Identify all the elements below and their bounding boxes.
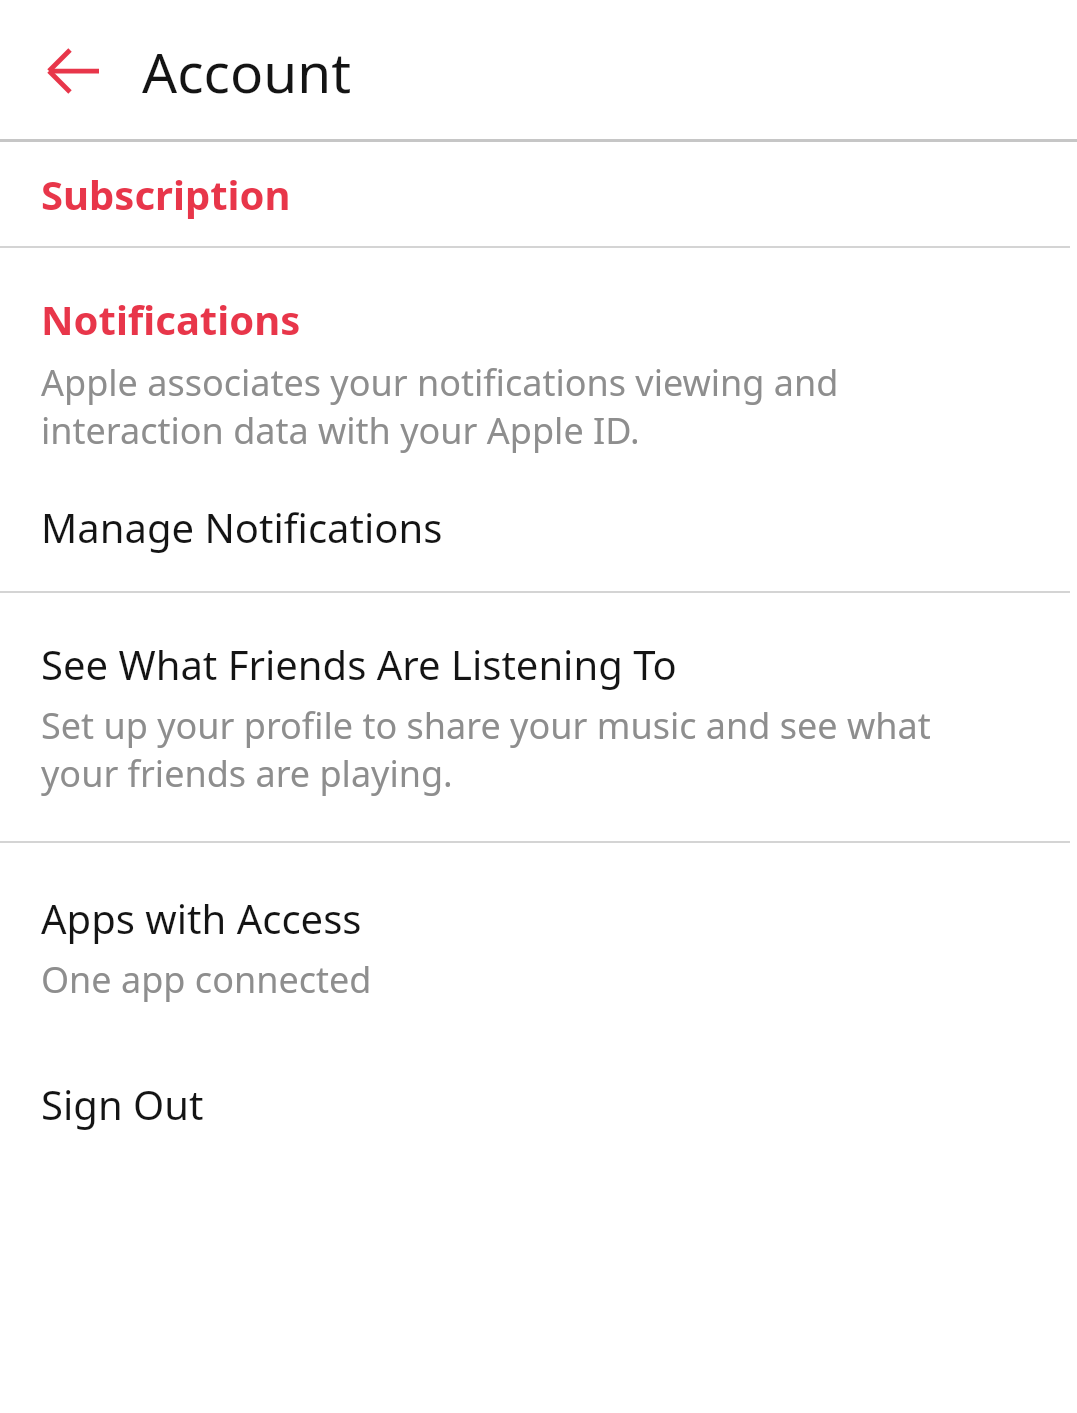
button[interactable]: Subscription [0, 142, 1077, 246]
staticText: Set up your profile to share your music … [41, 701, 992, 797]
staticText: Manage Notifications [41, 500, 443, 554]
button[interactable]: Apps with Access [0, 843, 1077, 1054]
button[interactable]: Back [20, 17, 128, 125]
button[interactable]: Notifications [0, 248, 1077, 496]
button[interactable]: See What Friends Are Listening To [0, 593, 1077, 841]
button[interactable]: Sign Out [0, 1054, 1077, 1154]
staticText: See What Friends Are Listening To [41, 637, 677, 691]
staticText: Sign Out [41, 1077, 204, 1131]
button[interactable]: Manage Notifications [0, 496, 1077, 591]
staticText: Account [142, 34, 352, 109]
staticText: Subscription [41, 167, 291, 221]
staticText: Apps with Access [41, 891, 362, 945]
staticText: Notifications [41, 292, 301, 346]
staticText: One app connected [41, 955, 372, 1004]
staticText: Apple associates your notifications view… [41, 358, 927, 454]
